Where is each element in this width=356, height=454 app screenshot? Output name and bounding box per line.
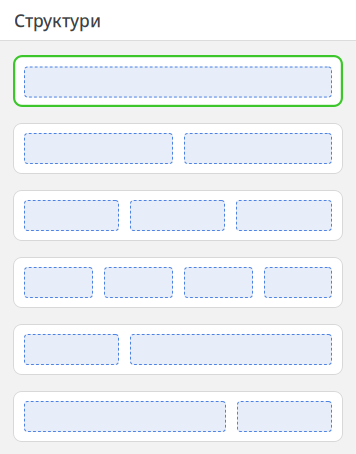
button[interactable] <box>13 257 343 308</box>
button[interactable] <box>13 123 343 174</box>
staticText: Структури <box>14 9 101 32</box>
button[interactable] <box>13 391 343 442</box>
button[interactable] <box>13 190 343 241</box>
button[interactable] <box>13 55 343 107</box>
button[interactable] <box>13 324 343 375</box>
